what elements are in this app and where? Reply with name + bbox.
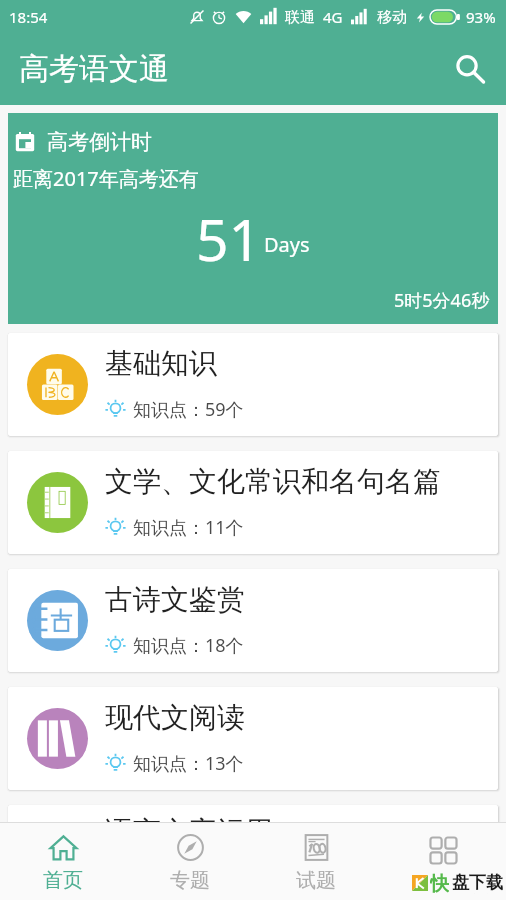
staticText: 知识点：20个 (133, 865, 244, 890)
staticText: 移动 (377, 8, 407, 27)
staticText: 高考倒计时 (47, 129, 152, 155)
staticText: 语言文字运用 (105, 814, 273, 849)
button[interactable]: Search (446, 45, 494, 93)
staticText: 首页 (43, 868, 83, 893)
staticText: 51 (196, 200, 262, 278)
staticText: 古诗文鉴赏 (105, 582, 245, 617)
button[interactable]: 文学、文化常识和名句名篇 (8, 451, 498, 554)
staticText: 专题 (170, 868, 210, 893)
staticText: 基础知识 (105, 346, 217, 381)
button[interactable]: 语言文字运用 (8, 805, 498, 900)
staticText: 知识点：13个 (133, 751, 244, 776)
staticText: 现代文阅读 (105, 700, 245, 735)
button[interactable]: 专题 (127, 823, 253, 900)
staticText: 知识点：18个 (133, 633, 244, 658)
button[interactable]: More (380, 823, 506, 900)
staticText: 盘下载 (452, 872, 503, 893)
staticText: 联通 (285, 8, 315, 27)
staticText: 18:54 (9, 7, 48, 27)
staticText: 4G (323, 7, 343, 27)
staticText: 知识点：11个 (133, 515, 244, 540)
button[interactable]: 首页 (0, 823, 126, 900)
staticText: 高考语文通 (19, 50, 169, 88)
button[interactable]: 古诗文鉴赏 (8, 569, 498, 672)
staticText: 文学、文化常识和名句名篇 (105, 464, 441, 499)
button[interactable]: 高考倒计时 (8, 113, 498, 324)
staticText: 快 (430, 872, 449, 894)
button[interactable]: 现代文阅读 (8, 687, 498, 790)
staticText: Days (264, 231, 310, 258)
staticText: 距离2017年高考还有 (13, 165, 199, 192)
staticText: 知识点：59个 (133, 397, 244, 422)
button[interactable]: 基础知识 (8, 333, 498, 436)
button[interactable]: 试题 (253, 823, 379, 900)
staticText: 93% (466, 7, 496, 27)
staticText: 试题 (296, 868, 336, 893)
staticText: 5时5分46秒 (394, 288, 490, 313)
